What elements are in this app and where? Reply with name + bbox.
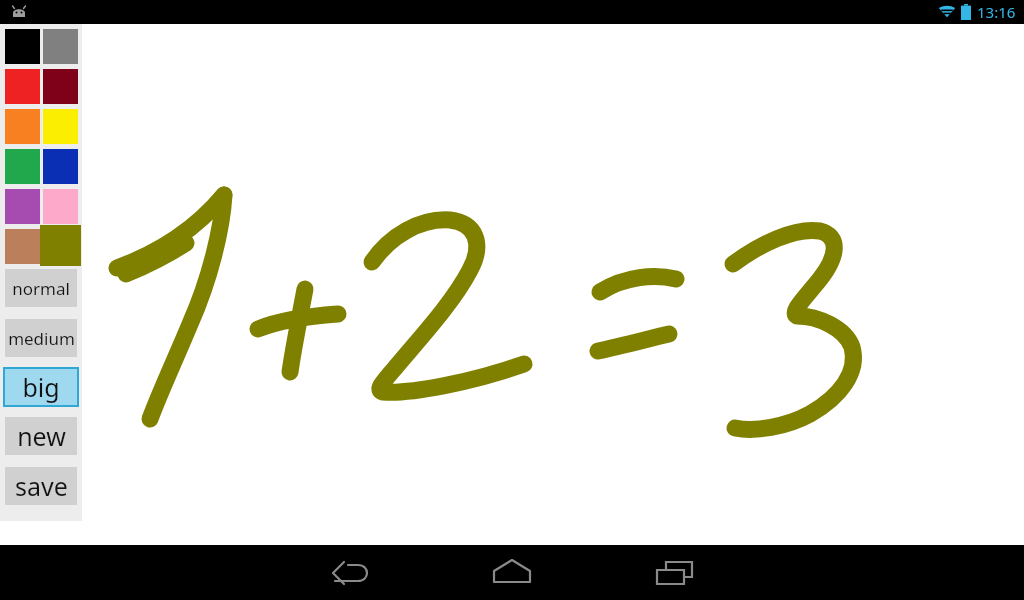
- button[interactable]: save: [5, 467, 77, 505]
- button[interactable]: new: [5, 417, 77, 455]
- button[interactable]: big: [3, 367, 79, 407]
- button[interactable]: normal: [5, 269, 77, 307]
- staticText: new: [17, 419, 66, 453]
- button[interactable]: Home: [472, 550, 552, 596]
- staticText: normal: [12, 277, 70, 300]
- button[interactable]: Back: [310, 550, 390, 596]
- staticText: big: [22, 370, 60, 404]
- button[interactable]: Recent apps: [635, 550, 715, 596]
- staticText: 13:16: [977, 2, 1016, 22]
- staticText: save: [15, 469, 68, 503]
- button[interactable]: medium: [5, 319, 77, 357]
- staticText: medium: [8, 327, 75, 350]
